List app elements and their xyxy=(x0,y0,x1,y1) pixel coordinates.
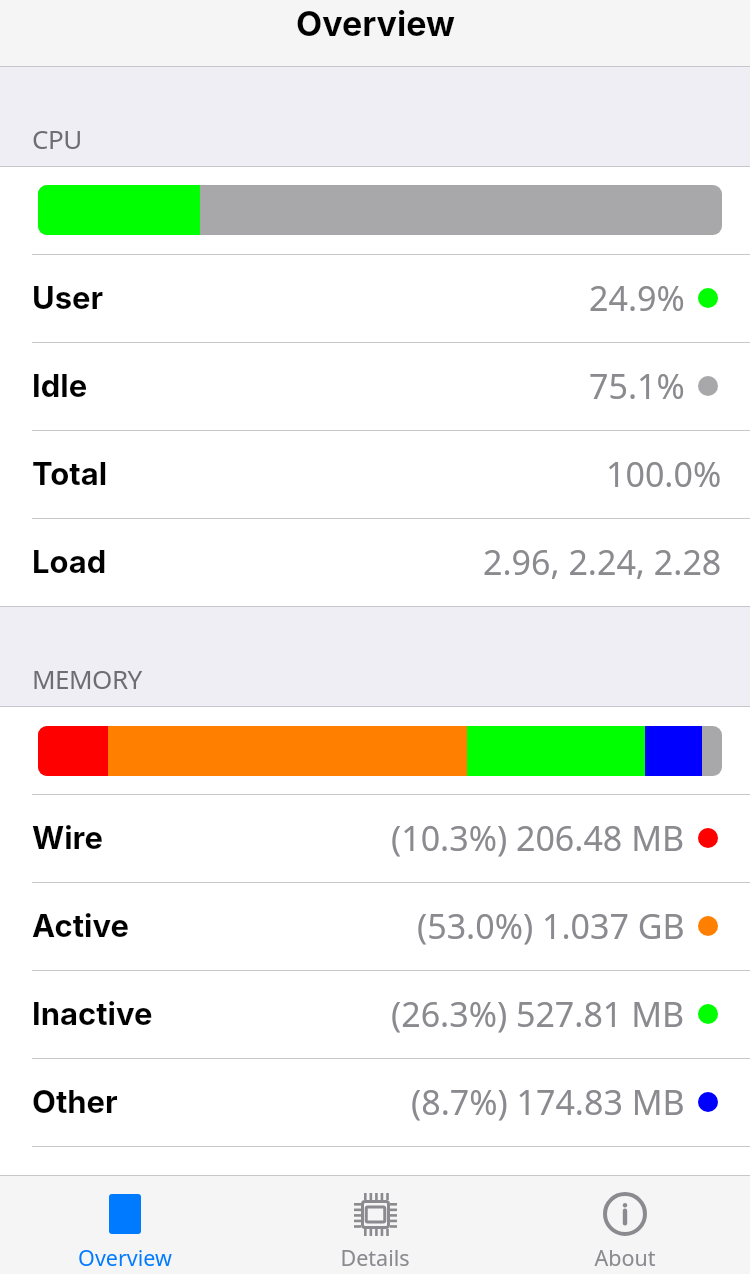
button[interactable]: Inactive xyxy=(0,970,750,1058)
staticText: Other xyxy=(32,1083,118,1121)
staticText: 2.96, 2.24, 2.28 xyxy=(483,539,722,585)
staticText: (53.0%) 1.037 GB xyxy=(417,903,685,949)
button[interactable]: Total xyxy=(0,430,750,518)
staticText: Overview xyxy=(78,1243,172,1272)
staticText: MEMORY xyxy=(32,661,142,696)
staticText: (26.3%) 527.81 MB xyxy=(391,991,685,1037)
staticText: User xyxy=(32,279,104,317)
staticText: Inactive xyxy=(32,995,153,1033)
staticText: Active xyxy=(32,907,129,945)
staticText: 75.1% xyxy=(589,363,685,409)
staticText: Details xyxy=(340,1243,410,1272)
button[interactable]: Overview xyxy=(0,1176,250,1274)
button[interactable]: Wire xyxy=(0,794,750,882)
staticText: About xyxy=(594,1243,656,1272)
button[interactable]: User xyxy=(0,254,750,342)
button[interactable]: Other xyxy=(0,1058,750,1146)
staticText: (10.3%) 206.48 MB xyxy=(391,815,685,861)
staticText: 24.9% xyxy=(589,275,685,321)
staticText: Wire xyxy=(32,819,103,857)
staticText: Total xyxy=(32,455,108,493)
staticText: Idle xyxy=(32,367,88,405)
button[interactable]: Load xyxy=(0,518,750,606)
staticText: Overview xyxy=(296,3,455,44)
staticText: (8.7%) 174.83 MB xyxy=(411,1079,685,1125)
staticText: Load xyxy=(32,543,107,581)
button[interactable]: About xyxy=(500,1176,750,1274)
button[interactable]: Idle xyxy=(0,342,750,430)
button[interactable]: Active xyxy=(0,882,750,970)
staticText: 100.0% xyxy=(606,451,722,497)
staticText: CPU xyxy=(32,121,82,156)
button[interactable]: Details xyxy=(250,1176,500,1274)
